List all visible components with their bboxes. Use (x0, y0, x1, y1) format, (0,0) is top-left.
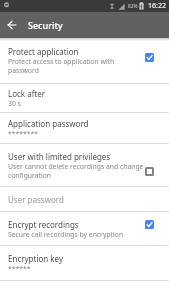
button[interactable]: Protect application (0, 38, 169, 83)
button[interactable] (7, 20, 17, 30)
staticText: Lock after (8, 88, 46, 99)
button[interactable]: Lock after (0, 84, 169, 112)
staticText: User with limited privileges (8, 151, 111, 162)
staticText: Application password (8, 118, 89, 129)
staticText: ****** (8, 264, 31, 273)
staticText: Protect application (8, 46, 79, 57)
button[interactable]: Encryption key (0, 246, 169, 280)
staticText: Secure call recordings by encryption (8, 230, 124, 239)
staticText: Protect access to application with passw… (8, 57, 115, 75)
staticText: 30 s (8, 99, 21, 108)
staticText: 82% (128, 3, 138, 10)
staticText: 16:22 (148, 1, 166, 11)
button[interactable]: Application password (0, 113, 169, 143)
staticText: Encryption key (8, 253, 64, 264)
button[interactable]: User password (0, 187, 169, 211)
staticText: ******** (8, 129, 38, 138)
staticText: Security (28, 19, 63, 31)
button[interactable]: Encrypt recordings (0, 212, 169, 245)
staticText: User cannot delete recordings and change… (8, 162, 144, 180)
button[interactable]: User with limited privileges (0, 144, 169, 186)
staticText: User password (8, 194, 64, 205)
staticText: Encrypt recordings (8, 219, 79, 230)
